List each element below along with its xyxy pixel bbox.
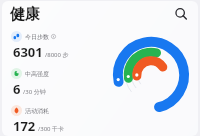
staticText: 6301 (13, 43, 43, 61)
staticText: 活动消耗 (25, 107, 49, 115)
staticText: 今日步数 (25, 33, 49, 41)
button[interactable]: 今日步数 (11, 31, 107, 61)
button[interactable]: Search (170, 3, 192, 25)
staticText: /30 分钟 (23, 88, 46, 96)
staticText: 172 (13, 117, 36, 135)
staticText: 6 (13, 80, 21, 98)
staticText: 健康 (10, 5, 40, 24)
button[interactable]: 活动消耗 (11, 105, 107, 135)
button[interactable]: 中高强度 (11, 68, 107, 98)
staticText: 中高强度 (25, 70, 49, 78)
staticText: /300 千卡 (38, 125, 65, 133)
staticText: /8000 步 (45, 51, 69, 59)
button[interactable]: Activity rings (108, 32, 194, 118)
